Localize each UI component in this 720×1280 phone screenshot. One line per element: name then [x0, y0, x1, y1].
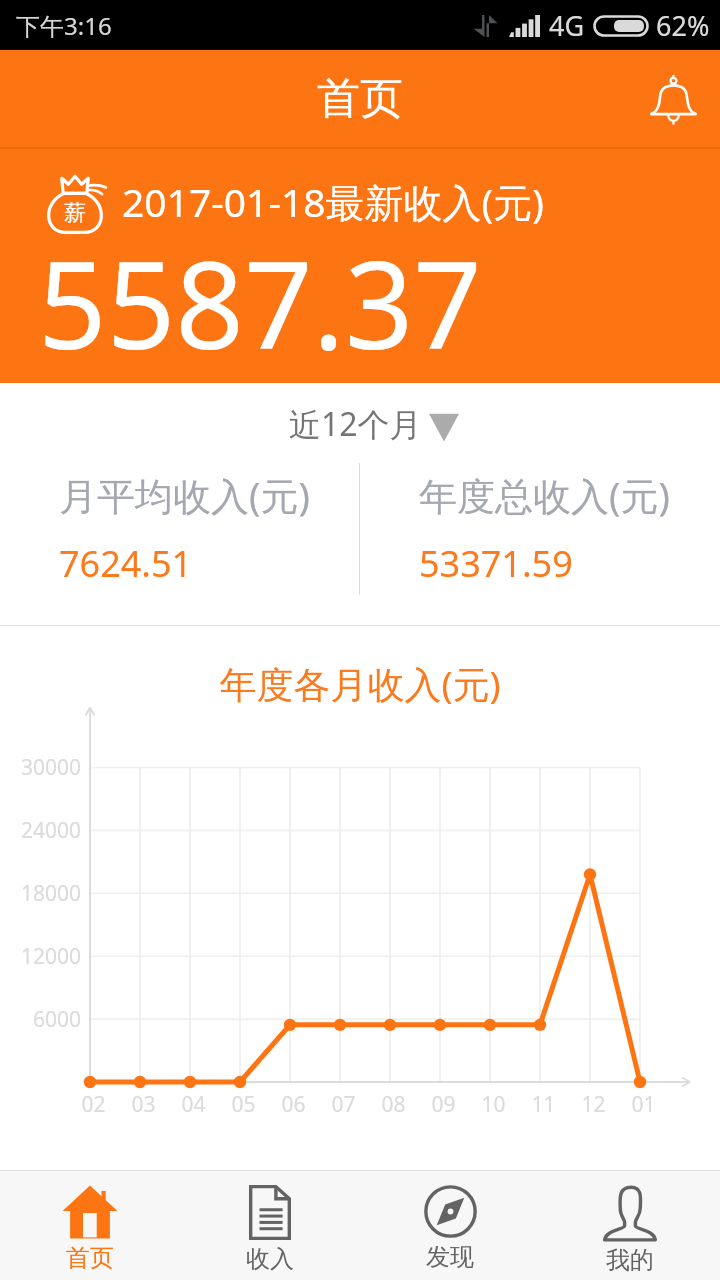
staticText: 我的 — [606, 1245, 654, 1275]
staticText: 下午3:16 — [16, 9, 112, 42]
staticText: 年度各月收入(元) — [0, 658, 720, 709]
staticText: 4G — [549, 7, 585, 44]
staticText: 首页 — [66, 1243, 114, 1273]
staticText: 62% — [656, 7, 710, 44]
staticText: 月平均收入(元) — [59, 469, 310, 521]
staticText: 2017-01-18最新收入(元) — [122, 175, 544, 228]
staticText: 近12个月 — [289, 402, 422, 446]
staticText: 5587.37 — [38, 221, 482, 370]
staticText: 首页 — [317, 72, 403, 126]
button[interactable]: 近12个月 — [269, 393, 451, 445]
staticText: 收入 — [246, 1244, 294, 1274]
button[interactable]: Notifications — [638, 64, 708, 134]
button[interactable]: 首页 — [0, 1171, 180, 1280]
staticText: 年度总收入(元) — [419, 469, 670, 521]
staticText: 7624.51 — [59, 539, 193, 588]
button[interactable]: 收入 — [180, 1171, 360, 1280]
staticText: 53371.59 — [419, 539, 573, 588]
button[interactable]: 我的 — [540, 1171, 720, 1280]
staticText: 发现 — [426, 1242, 474, 1272]
button[interactable]: 发现 — [360, 1171, 540, 1280]
